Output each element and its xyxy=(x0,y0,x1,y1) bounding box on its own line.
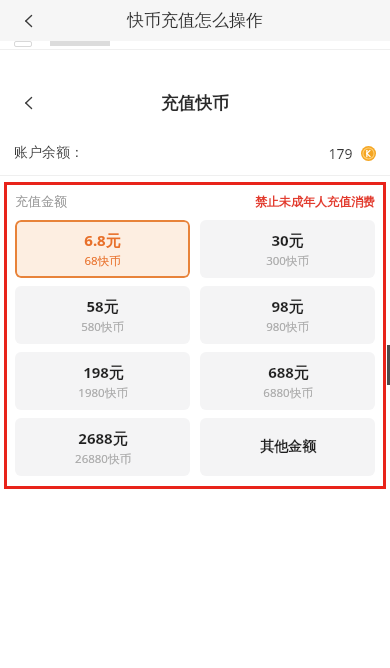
staticText: 2688元 xyxy=(78,428,128,448)
staticText: 其他金额 xyxy=(260,438,316,456)
staticText: 198元 xyxy=(83,362,124,382)
staticText: 580快币 xyxy=(81,319,124,335)
button[interactable]: 30元 xyxy=(200,220,375,278)
staticText: 6.8元 xyxy=(84,230,121,250)
button[interactable]: 98元 xyxy=(200,286,375,344)
button[interactable]: 58元 xyxy=(15,286,190,344)
button[interactable]: 198元 xyxy=(15,352,190,410)
staticText: 68快币 xyxy=(84,253,121,269)
staticText: 26880快币 xyxy=(75,451,131,467)
staticText: 688元 xyxy=(268,362,309,382)
staticText: 6880快币 xyxy=(263,385,313,401)
button[interactable]: 返回 xyxy=(14,6,44,36)
button[interactable]: 返回 xyxy=(14,88,44,118)
staticText: 快币充值怎么操作 xyxy=(127,10,263,31)
staticText: 179 xyxy=(328,144,353,163)
button[interactable]: 688元 xyxy=(200,352,375,410)
staticText: 58元 xyxy=(86,296,119,316)
staticText: 账户余额： xyxy=(14,144,84,162)
button[interactable]: 其他金额 xyxy=(200,418,375,476)
staticText: 充值金额 xyxy=(15,193,67,209)
staticText: 30元 xyxy=(271,230,304,250)
button[interactable]: 2688元 xyxy=(15,418,190,476)
staticText: 980快币 xyxy=(266,319,309,335)
staticText: 98元 xyxy=(271,296,304,316)
staticText: 300快币 xyxy=(266,253,309,269)
staticText: 充值快币 xyxy=(161,93,229,114)
staticText: 1980快币 xyxy=(78,385,128,401)
button[interactable]: 6.8元 xyxy=(15,220,190,278)
staticText: 禁止未成年人充值消费 xyxy=(255,194,375,209)
